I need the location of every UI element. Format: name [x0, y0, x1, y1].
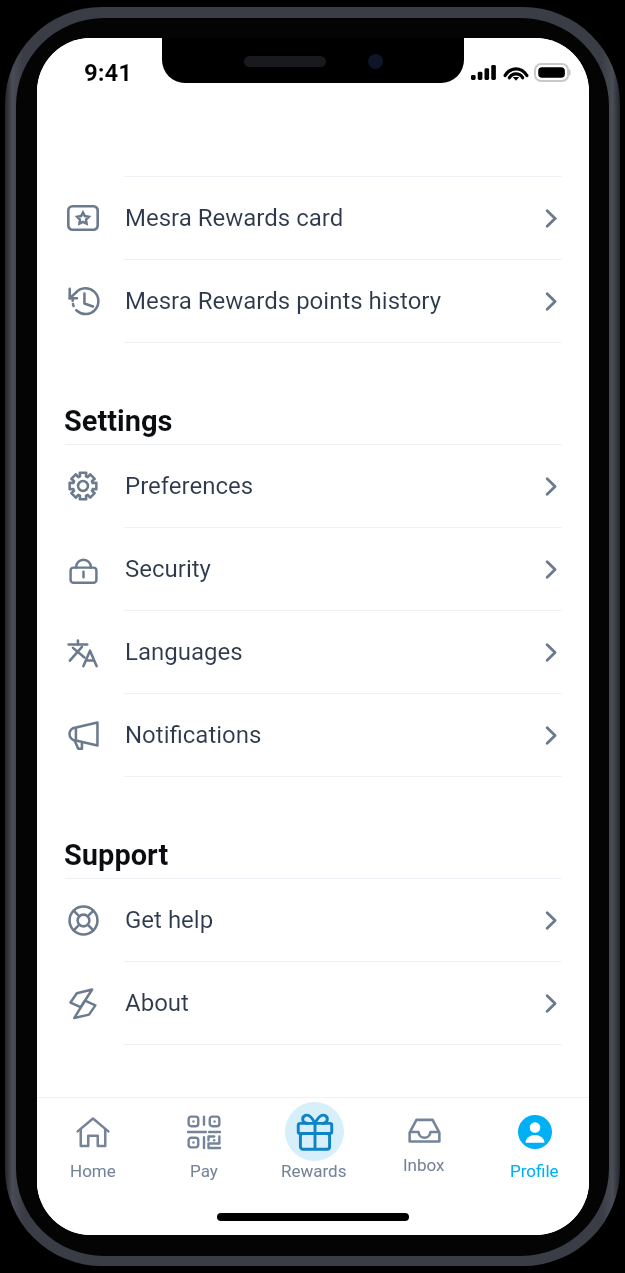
staticText: About — [125, 989, 189, 1017]
button[interactable]: Mesra Rewards card — [37, 177, 589, 259]
staticText: Mesra Rewards card — [125, 204, 344, 232]
button[interactable]: Rewards — [259, 1102, 369, 1181]
staticText: Rewards — [281, 1161, 347, 1181]
staticText: Preferences — [125, 472, 254, 500]
staticText: Settings — [64, 404, 173, 438]
staticText: Support — [64, 838, 169, 872]
staticText: Pay — [190, 1161, 218, 1181]
button[interactable]: Security — [37, 528, 589, 610]
staticText: Profile — [510, 1161, 559, 1181]
button[interactable]: Inbox — [369, 1102, 479, 1181]
staticText: Mesra Rewards points history — [125, 287, 442, 315]
button[interactable]: Home — [37, 1102, 148, 1181]
button[interactable]: Mesra Rewards points history — [37, 260, 589, 342]
staticText: Inbox — [403, 1155, 445, 1175]
button[interactable]: Languages — [37, 611, 589, 693]
button[interactable]: Profile — [479, 1102, 589, 1181]
button[interactable]: Notifications — [37, 694, 589, 776]
button[interactable]: About — [37, 962, 589, 1044]
staticText: Notifications — [125, 721, 262, 749]
button[interactable]: Pay — [148, 1102, 259, 1181]
staticText: Languages — [125, 638, 243, 666]
button[interactable]: Get help — [37, 879, 589, 961]
staticText: 9:41 — [84, 59, 133, 87]
staticText: Home — [70, 1161, 116, 1181]
button[interactable]: Preferences — [37, 445, 589, 527]
staticText: Security — [125, 555, 211, 583]
staticText: Get help — [125, 906, 214, 934]
